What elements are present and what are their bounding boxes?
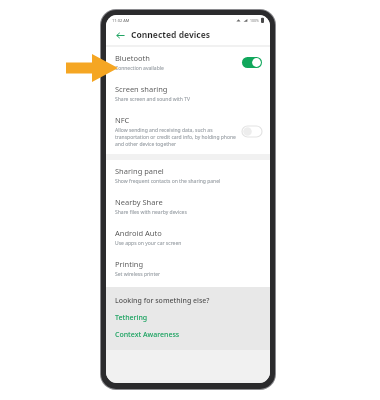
- staticText: Connected devices: [131, 29, 211, 41]
- staticText: Screen sharing: [115, 84, 168, 94]
- button[interactable]: NFC: [106, 109, 270, 154]
- staticText: Allow sending and receiving data, such a…: [115, 127, 236, 148]
- button[interactable]: Android Auto: [106, 222, 270, 253]
- staticText: Sharing panel: [115, 166, 164, 176]
- staticText: Share files with nearby devices: [115, 209, 187, 216]
- button[interactable]: Nearby Share: [106, 191, 270, 222]
- staticText: 100%: [250, 18, 259, 23]
- button[interactable]: Printing: [106, 253, 270, 284]
- staticText: Connection available: [115, 65, 164, 72]
- staticText: Android Auto: [115, 228, 162, 238]
- button[interactable]: Turn off: [242, 57, 262, 68]
- staticText: Show frequent contacts on the sharing pa…: [115, 178, 221, 185]
- button[interactable]: Tethering: [115, 313, 148, 323]
- staticText: Looking for something else?: [115, 296, 210, 306]
- staticText: Nearby Share: [115, 197, 163, 207]
- button[interactable]: Bluetooth: [106, 47, 270, 78]
- staticText: Context Awareness: [115, 330, 180, 340]
- button[interactable]: Context Awareness: [115, 330, 180, 340]
- button[interactable]: Screen sharing: [106, 78, 270, 109]
- button[interactable]: Sharing panel: [106, 160, 270, 191]
- button[interactable]: Turn on: [242, 126, 262, 137]
- staticText: Tethering: [115, 313, 148, 323]
- staticText: 11:02 AM: [112, 18, 130, 23]
- staticText: Printing: [115, 259, 144, 269]
- button[interactable]: Back: [113, 28, 127, 42]
- staticText: Set wireless printer: [115, 271, 161, 278]
- staticText: Use apps on your car screen: [115, 240, 182, 247]
- staticText: Bluetooth: [115, 53, 150, 63]
- staticText: NFC: [115, 115, 130, 125]
- staticText: Share screen and sound with TV: [115, 96, 190, 103]
